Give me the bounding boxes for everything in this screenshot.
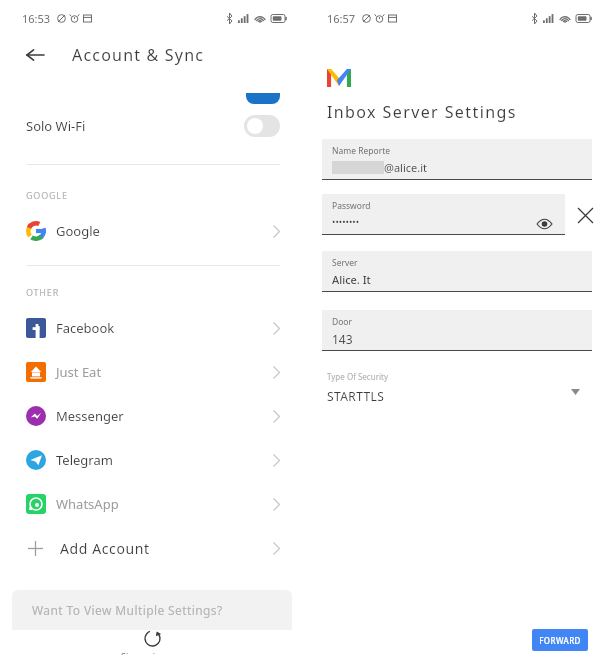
staticText: Door [332, 316, 353, 328]
button[interactable]: Add Account [0, 526, 305, 570]
staticText: Account & Sync [72, 44, 205, 66]
button[interactable]: Facebook [0, 306, 305, 350]
staticText: Solo Wi-Fi [26, 117, 86, 135]
staticText: Server [332, 257, 358, 269]
button[interactable]: Clear [574, 204, 596, 226]
button[interactable]: Password [322, 194, 565, 235]
button[interactable]: WhatsApp [0, 482, 305, 526]
staticText: WhatsApp [56, 495, 119, 513]
staticText: 16:57 [327, 11, 356, 26]
staticText: 16:53 [22, 11, 51, 26]
staticText: Add Account [60, 539, 150, 558]
staticText: Type Of Security [327, 371, 388, 382]
button[interactable]: Sincronizza ora [0, 630, 305, 655]
staticText: Sincronizza ora [121, 650, 185, 655]
staticText: Want To View Multiple Settings? [32, 602, 223, 618]
button[interactable]: Show password [535, 215, 553, 233]
button[interactable]: Just Eat [0, 350, 305, 394]
staticText: Messenger [56, 407, 124, 425]
staticText: OTHER [26, 286, 60, 298]
staticText: @alice.it [384, 160, 427, 175]
button[interactable]: Type Of Security [305, 371, 610, 404]
staticText: Telegram [56, 451, 113, 469]
staticText: GOOGLE [26, 189, 68, 201]
staticText: Password [332, 200, 371, 212]
staticText: •••••••• [332, 215, 360, 227]
staticText: Name Reporte [332, 145, 391, 157]
button[interactable]: FORWARD [532, 629, 588, 651]
staticText: Just Eat [56, 363, 102, 381]
button[interactable]: Solo Wi-Fi [0, 104, 305, 148]
button[interactable]: Name Reporte [322, 139, 592, 180]
button[interactable]: Telegram [0, 438, 305, 482]
button[interactable]: Messenger [0, 394, 305, 438]
button[interactable] [246, 93, 280, 104]
staticText: STARTTLS [327, 388, 385, 404]
button[interactable]: Want To View Multiple Settings? [12, 590, 292, 630]
button[interactable]: Google [0, 209, 305, 253]
staticText: 143 [332, 331, 353, 347]
staticText: FORWARD [539, 635, 581, 646]
button[interactable]: Door [322, 310, 592, 351]
staticText: Alice. It [332, 272, 371, 287]
staticText: Inbox Server Settings [327, 101, 517, 123]
staticText: Google [56, 222, 100, 240]
button[interactable]: Server [322, 251, 592, 292]
staticText: Facebook [56, 319, 115, 337]
button[interactable]: Back [18, 38, 52, 72]
